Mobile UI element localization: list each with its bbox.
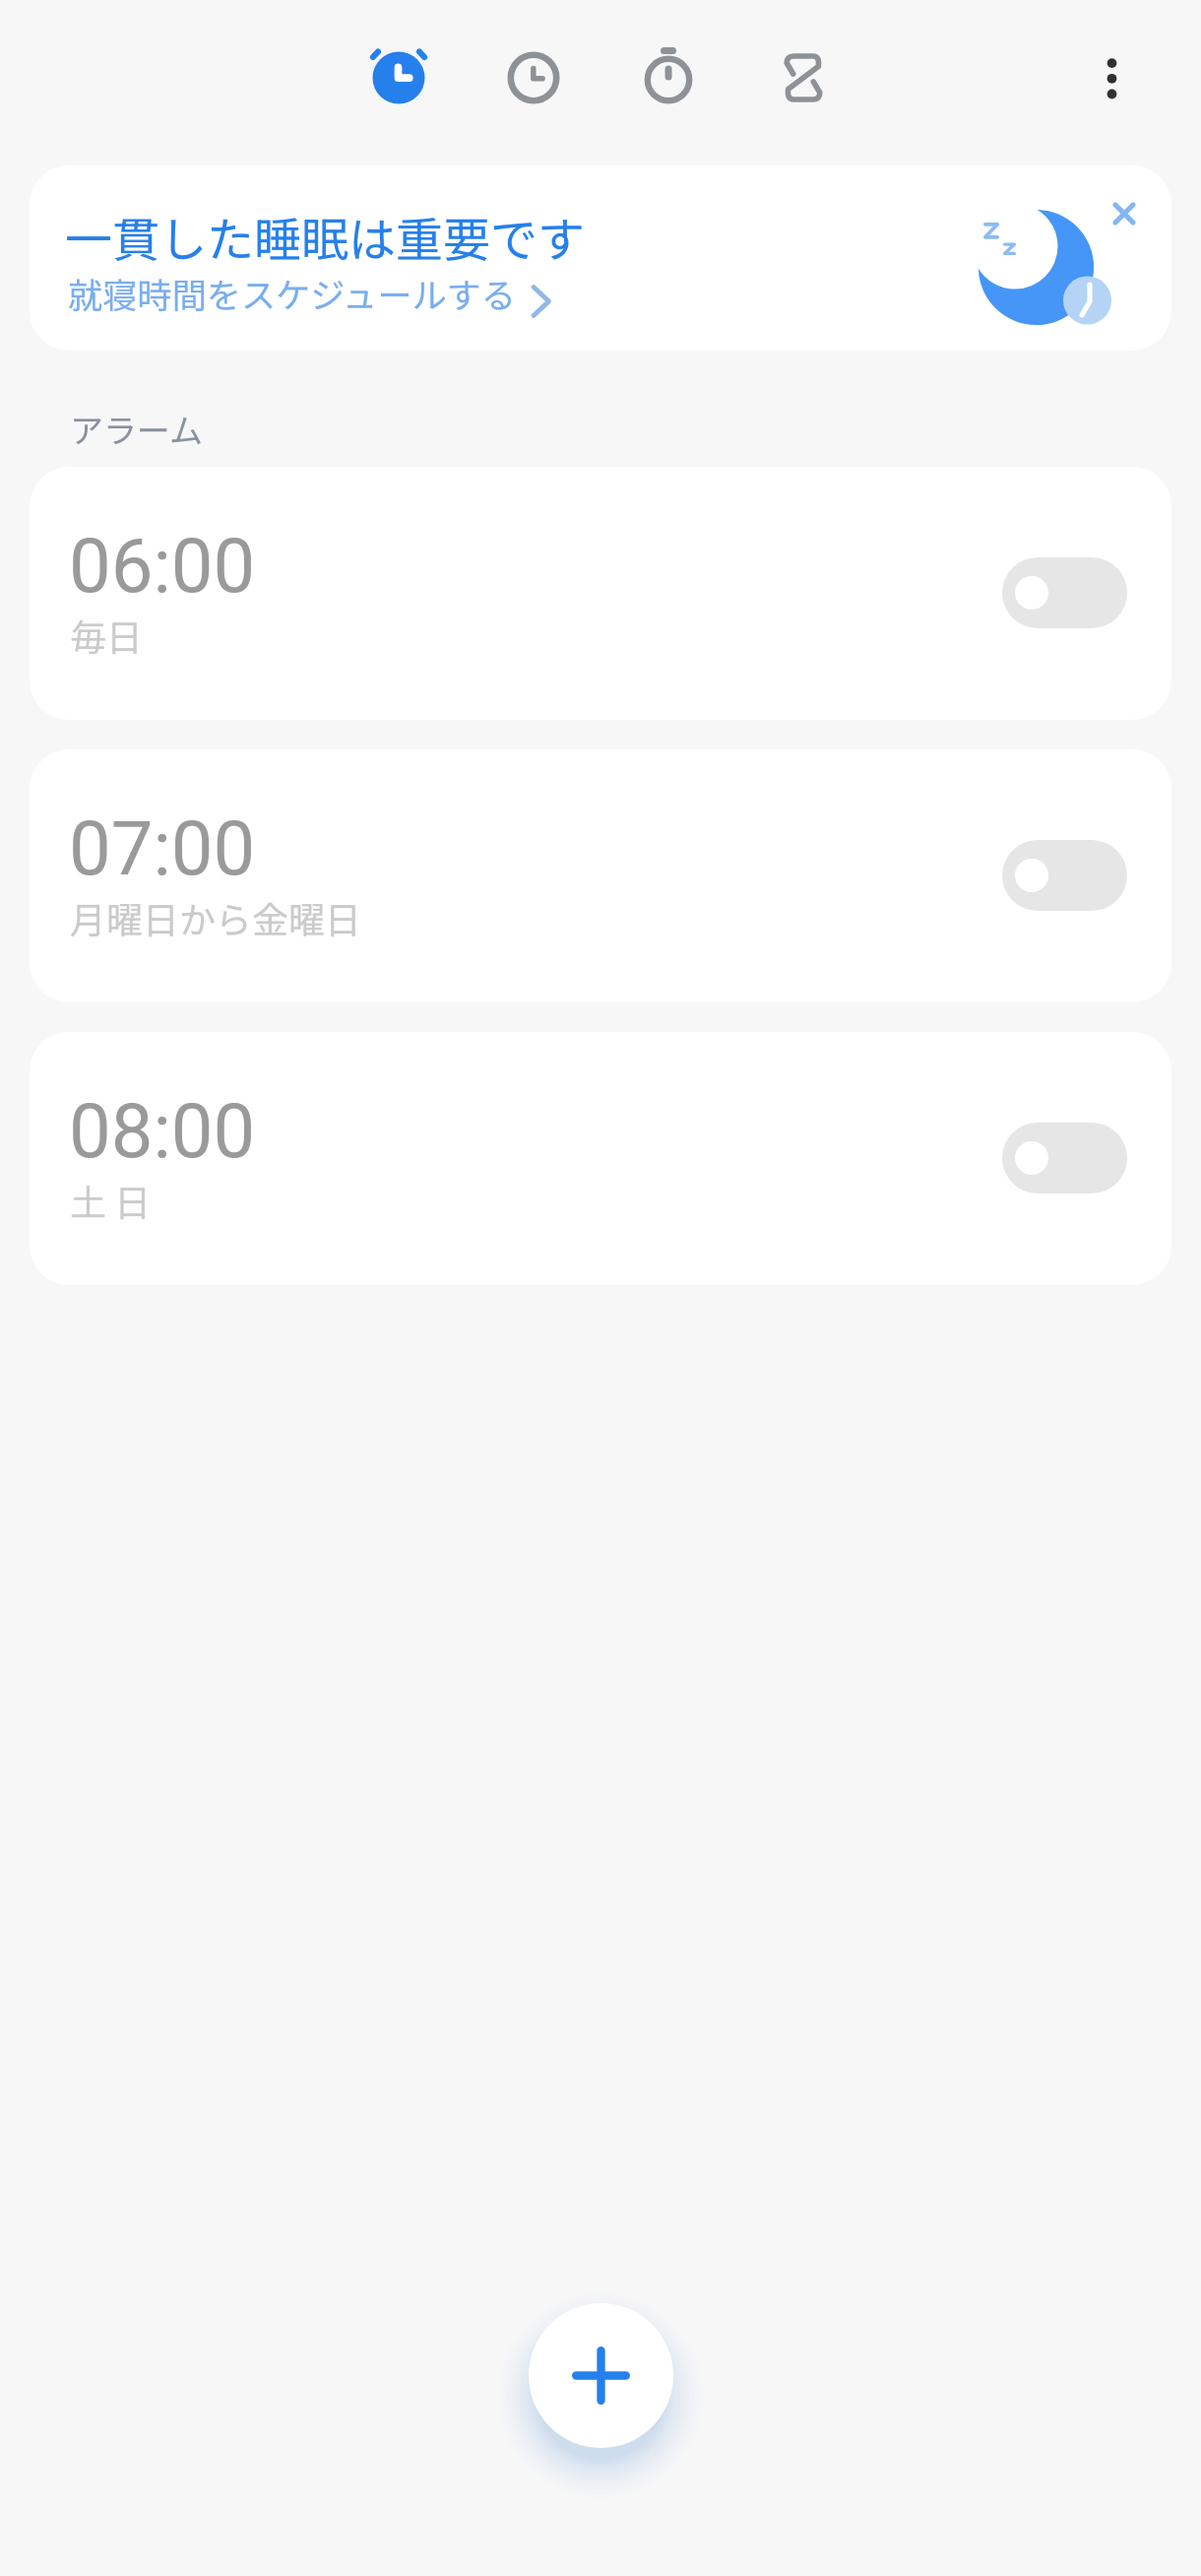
staticText: 月曜日から金曜日 <box>70 891 361 944</box>
button[interactable]: Dismiss <box>1085 174 1164 253</box>
staticText: 08:00 <box>69 1087 256 1175</box>
staticText: 一貫した睡眠は重要です <box>65 202 586 271</box>
button[interactable]: Toggle alarm <box>1002 1123 1127 1193</box>
button[interactable]: 一貫した睡眠は重要です <box>30 165 1171 351</box>
button[interactable]: Alarm <box>332 11 466 145</box>
button[interactable]: Timer <box>736 11 870 145</box>
button[interactable]: 06:00 <box>30 467 1171 720</box>
button[interactable]: 08:00 <box>30 1032 1171 1285</box>
staticText: 06:00 <box>69 522 256 610</box>
staticText: 就寝時間をスケジュールする <box>68 268 516 318</box>
button[interactable]: 07:00 <box>30 749 1171 1002</box>
staticText: 土 日 <box>70 1174 152 1227</box>
button[interactable]: Stopwatch <box>601 11 735 145</box>
button[interactable]: Clock <box>467 11 600 145</box>
button[interactable]: More options <box>1043 10 1178 145</box>
staticText: 毎日 <box>70 609 143 662</box>
button[interactable]: Add alarm <box>529 2303 673 2448</box>
button[interactable]: Toggle alarm <box>1002 557 1127 628</box>
staticText: アラーム <box>70 405 203 453</box>
staticText: 07:00 <box>69 805 256 892</box>
button[interactable]: Toggle alarm <box>1002 840 1127 911</box>
